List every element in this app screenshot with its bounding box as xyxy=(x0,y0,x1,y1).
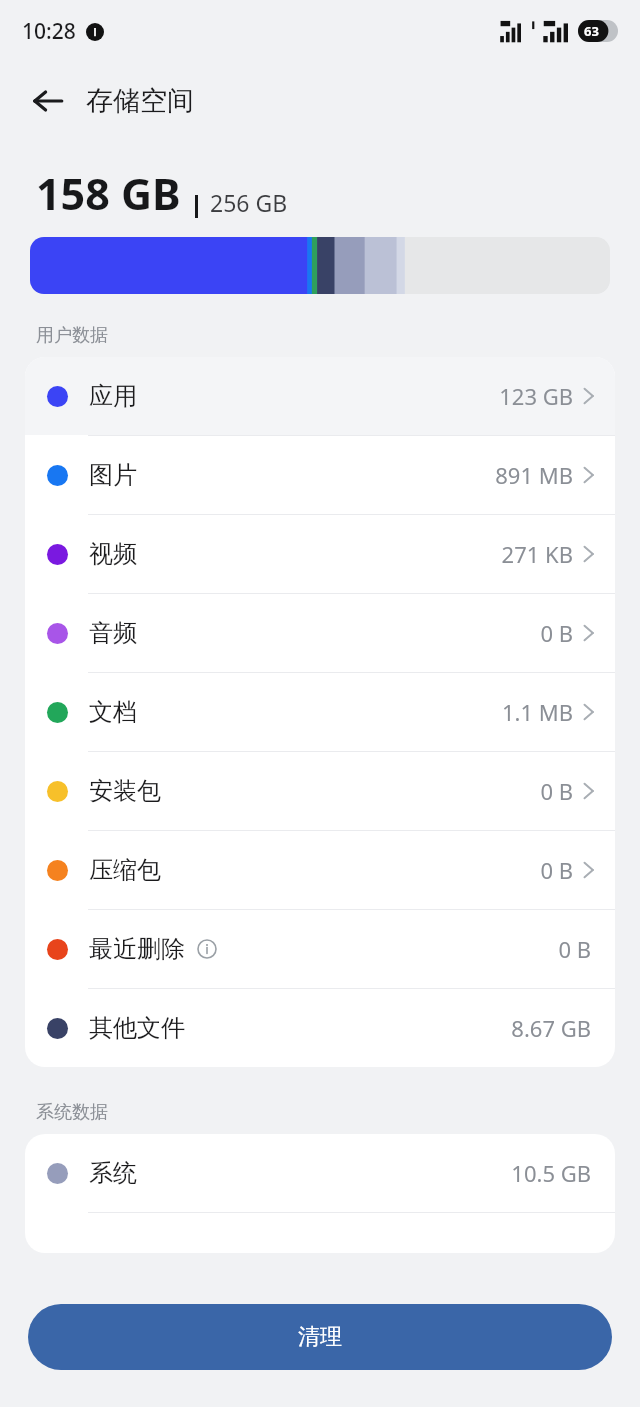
staticText: 压缩包 xyxy=(89,855,161,885)
button[interactable]: 文档 xyxy=(25,673,615,751)
staticText: 其他文件 xyxy=(89,1013,185,1043)
other: Info xyxy=(197,939,217,959)
staticText: 系统数据 xyxy=(36,1101,108,1124)
staticText: 0 B xyxy=(558,934,591,964)
staticText: 0 B xyxy=(540,776,573,806)
staticText: 安装包 xyxy=(89,776,161,806)
staticText: 最近删除 xyxy=(89,934,185,964)
button[interactable]: 系统 xyxy=(25,1134,615,1212)
button[interactable]: 图片 xyxy=(25,436,615,514)
staticText: 158 GB xyxy=(36,164,181,223)
staticText: 8.67 GB xyxy=(511,1013,591,1043)
staticText: 63 xyxy=(584,22,599,40)
button[interactable]: 应用 xyxy=(25,357,615,435)
button[interactable]: 其他文件 xyxy=(25,989,615,1067)
button[interactable]: Back xyxy=(22,75,74,127)
button[interactable]: 音频 xyxy=(25,594,615,672)
staticText: 1.1 MB xyxy=(501,697,573,727)
button[interactable]: 清理 xyxy=(28,1304,612,1370)
staticText: 系统 xyxy=(89,1158,137,1188)
staticText: 视频 xyxy=(89,539,137,569)
staticText: 音频 xyxy=(89,618,137,648)
staticText: 891 MB xyxy=(495,460,573,490)
staticText: 应用 xyxy=(89,381,137,411)
staticText: 用户数据 xyxy=(36,324,108,347)
staticText: 0 B xyxy=(540,855,573,885)
staticText: 271 KB xyxy=(501,539,573,569)
button[interactable]: 视频 xyxy=(25,515,615,593)
staticText: 图片 xyxy=(89,460,137,490)
staticText: 10:28 xyxy=(22,17,76,46)
staticText: 清理 xyxy=(298,1323,342,1351)
staticText: 256 GB xyxy=(210,187,288,218)
staticText: 存储空间 xyxy=(86,84,194,118)
staticText: 10.5 GB xyxy=(511,1158,591,1188)
button[interactable]: 最近删除 xyxy=(25,910,615,988)
button[interactable]: 压缩包 xyxy=(25,831,615,909)
staticText: 文档 xyxy=(89,697,137,727)
button[interactable]: 安装包 xyxy=(25,752,615,830)
staticText: 123 GB xyxy=(499,381,573,411)
staticText: 0 B xyxy=(540,618,573,648)
